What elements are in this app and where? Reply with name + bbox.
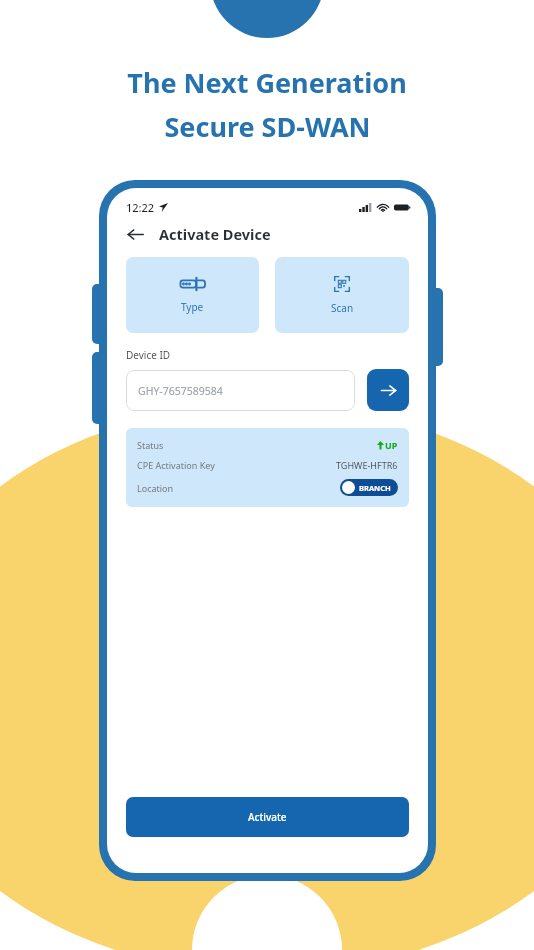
button[interactable]: GHY-7657589584 <box>126 370 355 411</box>
button[interactable]: Activate <box>126 797 409 837</box>
button[interactable]: Scan <box>275 257 409 333</box>
staticText: Activate <box>248 810 287 824</box>
button[interactable]: BRANCH <box>340 479 398 496</box>
staticText: Activate Device <box>159 224 271 244</box>
button[interactable]: Type <box>126 257 259 333</box>
staticText: Status <box>137 439 164 451</box>
staticText: Secure SD-WAN <box>164 108 371 145</box>
staticText: TGHWE-HFTR6 <box>336 459 398 471</box>
staticText: Location <box>137 482 174 494</box>
staticText: GHY-7657589584 <box>138 384 223 398</box>
button[interactable]: Back <box>123 222 147 246</box>
staticText: UP <box>385 439 398 451</box>
staticText: The Next Generation <box>127 64 407 101</box>
staticText: Scan <box>331 301 354 315</box>
button[interactable]: Submit device ID <box>367 369 409 411</box>
staticText: CPE Activation Key <box>137 459 215 471</box>
staticText: 12:22 <box>126 200 155 215</box>
staticText: BRANCH <box>359 483 391 493</box>
staticText: Type <box>181 300 204 314</box>
staticText: Device ID <box>126 348 171 362</box>
